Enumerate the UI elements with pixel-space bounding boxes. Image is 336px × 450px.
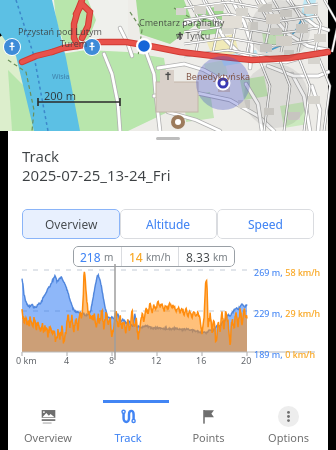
staticText: m: [104, 250, 114, 264]
staticText: km/h: [146, 250, 171, 264]
button[interactable]: Overview: [8, 403, 88, 450]
staticText: 269 m,: [254, 266, 283, 278]
staticText: Overview: [45, 216, 98, 232]
staticText: 20: [241, 354, 252, 366]
staticText: Przystań pod Lutym: [18, 25, 102, 37]
staticText: 200 m: [44, 88, 77, 103]
staticText: w Tyńcu: [176, 29, 211, 41]
staticText: 0 km: [16, 354, 37, 366]
button[interactable]: Altitude: [120, 209, 217, 239]
staticText: Benedyktyńska: [186, 70, 251, 82]
staticText: Track: [22, 146, 60, 166]
staticText: 218: [80, 249, 101, 265]
staticText: Overview: [24, 430, 72, 445]
staticText: 4: [64, 354, 70, 366]
staticText: 58 km/h: [283, 266, 321, 278]
staticText: 0 km/h: [283, 348, 315, 360]
staticText: 8.33: [186, 249, 210, 265]
staticText: Speed: [248, 216, 283, 232]
staticText: 2025-07-25_13-24_Fri: [22, 165, 171, 185]
staticText: 8: [109, 354, 115, 366]
staticText: Turem: [60, 37, 88, 49]
staticText: 189 m,: [254, 348, 283, 360]
button[interactable]: Track: [88, 403, 168, 450]
button[interactable]: Overview: [22, 209, 120, 239]
staticText: 29 km/h: [283, 307, 321, 319]
button[interactable]: Speed: [217, 209, 314, 239]
button[interactable]: Options: [248, 403, 328, 450]
staticText: Altitude: [146, 216, 191, 232]
staticText: 229 m,: [254, 307, 283, 319]
staticText: Wisła: [52, 72, 70, 82]
button[interactable]: Points: [168, 403, 248, 450]
staticText: 12: [151, 354, 162, 366]
staticText: 14: [129, 249, 143, 265]
staticText: Points: [192, 430, 225, 445]
staticText: Options: [268, 430, 309, 445]
staticText: 16: [196, 354, 207, 366]
staticText: Cmentarz parafialny: [139, 16, 225, 28]
staticText: Track: [114, 430, 142, 445]
staticText: km: [213, 250, 228, 264]
